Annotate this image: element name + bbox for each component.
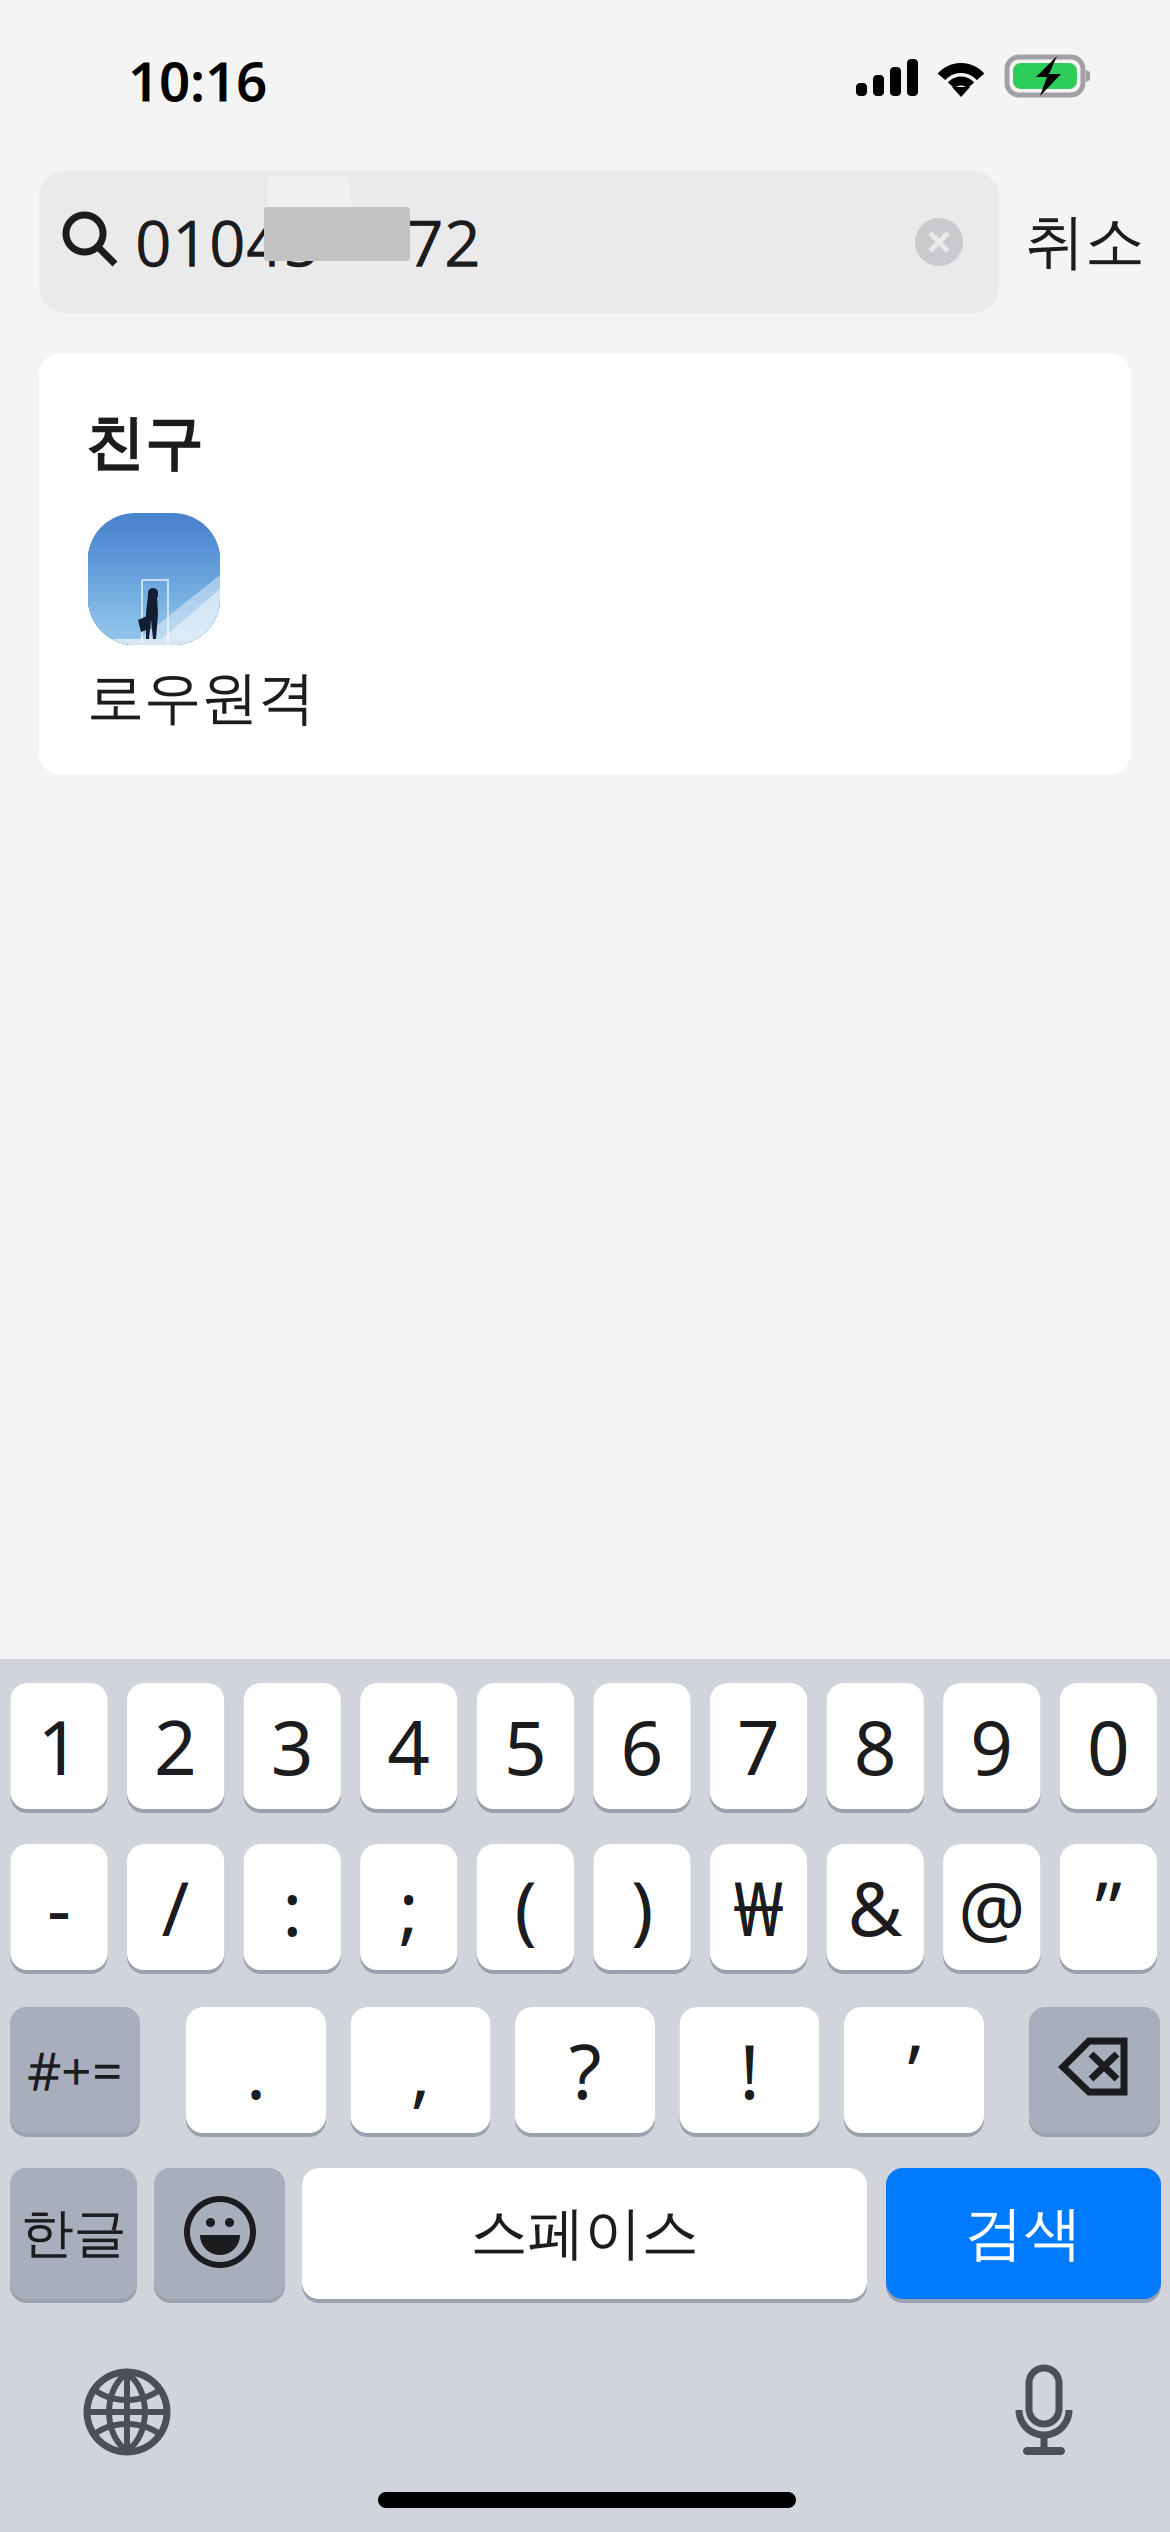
staticText: 7: [737, 1696, 780, 1796]
staticText: ”: [1095, 1857, 1122, 1957]
button[interactable]: &: [826, 1844, 924, 1974]
staticText: 01045: [135, 199, 320, 284]
button[interactable]: 취소: [1018, 171, 1152, 313]
button[interactable]: Emoji: [154, 2168, 285, 2303]
staticText: 0: [1087, 1696, 1130, 1796]
staticText: -: [47, 1857, 71, 1957]
button[interactable]: ’: [844, 2007, 984, 2137]
button[interactable]: (: [477, 1844, 574, 1974]
button[interactable]: #+=: [10, 2007, 140, 2137]
staticText: .: [246, 2020, 266, 2120]
button[interactable]: 2: [127, 1683, 224, 1813]
button[interactable]: :: [243, 1844, 341, 1974]
staticText: 6: [620, 1696, 663, 1796]
button[interactable]: 로우원격: [88, 513, 348, 728]
button[interactable]: ): [593, 1844, 691, 1974]
button[interactable]: 4: [360, 1683, 457, 1813]
button[interactable]: 9: [943, 1683, 1040, 1813]
staticText: 1: [37, 1696, 80, 1796]
button[interactable]: 스페이스: [302, 2168, 867, 2303]
button[interactable]: /: [127, 1844, 224, 1974]
button[interactable]: Dictation: [999, 2352, 1089, 2472]
button[interactable]: ,: [350, 2007, 490, 2137]
button[interactable]: 한글: [10, 2168, 137, 2303]
staticText: 3: [271, 1696, 314, 1796]
button[interactable]: !: [679, 2007, 819, 2137]
staticText: 스페이스: [470, 2198, 698, 2269]
staticText: /: [162, 1857, 190, 1957]
button[interactable]: Clear text: [901, 204, 977, 280]
staticText: 한글: [20, 2201, 126, 2266]
button[interactable]: 6: [593, 1683, 691, 1813]
staticText: 8: [854, 1696, 897, 1796]
staticText: 5: [504, 1696, 547, 1796]
staticText: 취소: [1025, 205, 1145, 279]
staticText: @: [958, 1857, 1025, 1957]
button[interactable]: 01045: [39, 171, 999, 313]
button[interactable]: ?: [515, 2007, 655, 2137]
button[interactable]: 1: [10, 1683, 108, 1813]
button[interactable]: @: [943, 1844, 1040, 1974]
button[interactable]: Backspace: [1029, 2007, 1160, 2137]
staticText: 2: [154, 1696, 197, 1796]
button[interactable]: 0: [1060, 1683, 1157, 1813]
button[interactable]: .: [186, 2007, 326, 2137]
staticText: ₩: [734, 1857, 784, 1957]
button[interactable]: 7: [710, 1683, 807, 1813]
staticText: !: [739, 2020, 759, 2120]
button[interactable]: -: [10, 1844, 108, 1974]
staticText: 10:16: [128, 44, 267, 117]
staticText: :: [282, 1857, 302, 1957]
staticText: (: [514, 1857, 536, 1957]
staticText: 친구: [85, 408, 203, 480]
button[interactable]: 3: [243, 1683, 341, 1813]
staticText: &: [848, 1857, 903, 1957]
staticText: 로우원격: [87, 663, 315, 733]
staticText: 4: [387, 1696, 430, 1796]
staticText: 검색: [964, 2197, 1082, 2270]
staticText: ;: [399, 1857, 419, 1957]
staticText: 9: [970, 1696, 1013, 1796]
staticText: ): [631, 1857, 653, 1957]
button[interactable]: ;: [360, 1844, 457, 1974]
button[interactable]: 5: [477, 1683, 574, 1813]
staticText: #+=: [27, 2035, 123, 2105]
button[interactable]: Change keyboard: [71, 2356, 183, 2468]
staticText: 72: [407, 199, 481, 284]
staticText: ,: [410, 2020, 430, 2120]
staticText: ?: [569, 2020, 601, 2120]
button[interactable]: ”: [1060, 1844, 1157, 1974]
button[interactable]: 8: [826, 1683, 924, 1813]
button[interactable]: 검색: [886, 2168, 1161, 2303]
staticText: ’: [907, 2020, 920, 2120]
button[interactable]: ₩: [710, 1844, 807, 1974]
